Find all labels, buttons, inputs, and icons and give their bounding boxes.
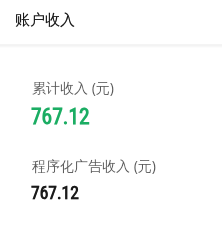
button[interactable]: 账户收入 (0, 0, 222, 44)
staticText: 程序化广告收入 (元) (32, 156, 157, 175)
staticText: 账户收入 (15, 11, 75, 30)
staticText: 累计收入 (元) (32, 78, 115, 97)
staticText: 账户收入 (15, 11, 75, 30)
staticText: 767.12 (31, 183, 79, 204)
staticText: 767.12 (31, 183, 79, 204)
staticText: 767.12 (31, 104, 90, 129)
